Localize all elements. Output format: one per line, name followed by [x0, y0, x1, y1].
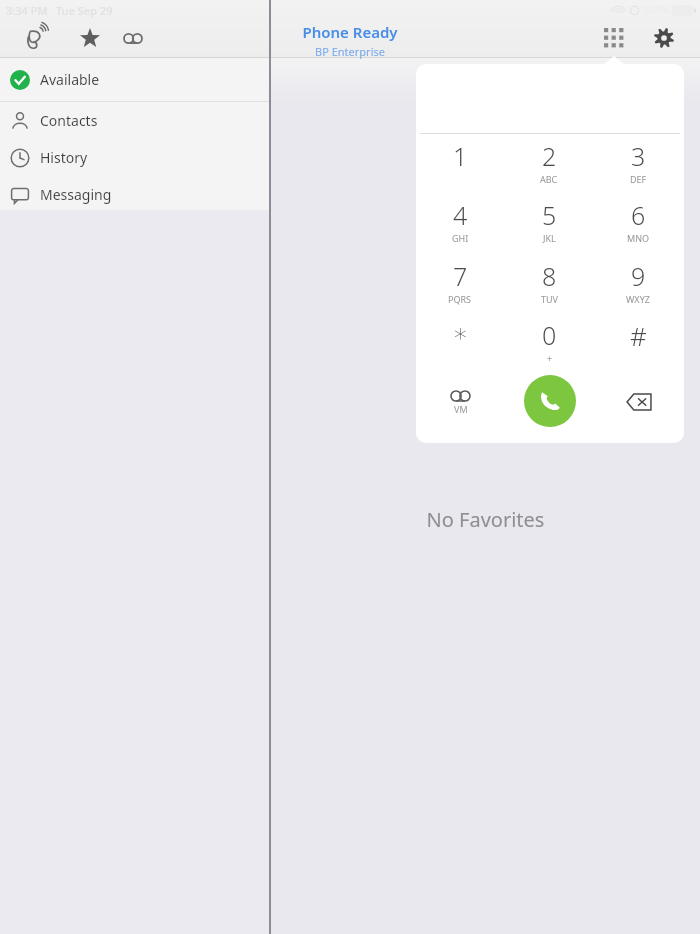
- staticText: WXYZ: [626, 293, 650, 305]
- staticText: ABC: [540, 173, 558, 185]
- button[interactable]: 2: [517, 139, 581, 187]
- staticText: 6: [631, 198, 646, 232]
- staticText: History: [40, 148, 88, 167]
- button[interactable]: Dialpad: [596, 20, 632, 56]
- button[interactable]: 3: [606, 139, 670, 187]
- button[interactable]: Available: [0, 58, 269, 101]
- staticText: 0: [542, 318, 557, 352]
- staticText: Available: [40, 70, 100, 89]
- staticText: 7: [453, 259, 468, 293]
- staticText: 3:34 PM Tue Sep 29: [6, 3, 113, 18]
- button[interactable]: 4: [428, 198, 492, 246]
- staticText: 4: [453, 198, 468, 232]
- button[interactable]: 9: [606, 259, 670, 307]
- staticText: DEF: [630, 173, 647, 185]
- button[interactable]: History: [0, 139, 269, 176]
- staticText: 8: [542, 259, 557, 293]
- staticText: BP Enterprise: [315, 44, 385, 59]
- button[interactable]: 7: [428, 259, 492, 307]
- button[interactable]: Voicemail: [115, 20, 151, 56]
- button[interactable]: 1: [428, 139, 492, 187]
- button[interactable]: Favorites: [72, 20, 108, 56]
- staticText: +: [547, 352, 553, 364]
- staticText: JKL: [543, 232, 556, 244]
- staticText: 9: [631, 259, 646, 293]
- button[interactable]: 8: [517, 259, 581, 307]
- button[interactable]: Messaging: [0, 176, 269, 213]
- staticText: GHI: [452, 232, 469, 244]
- staticText: MNO: [627, 232, 650, 244]
- button[interactable]: App logo: [16, 18, 56, 58]
- staticText: PQRS: [448, 293, 472, 305]
- staticText: #: [630, 318, 647, 353]
- staticText: Contacts: [40, 111, 98, 130]
- staticText: ∗: [452, 318, 469, 348]
- staticText: Phone Ready: [302, 22, 398, 42]
- staticText: 2: [542, 139, 557, 173]
- button[interactable]: 0: [517, 318, 581, 366]
- staticText: 1: [453, 139, 468, 173]
- staticText: Messaging: [40, 185, 112, 204]
- staticText: 5: [542, 198, 557, 232]
- button[interactable]: Voicemail: [430, 376, 490, 428]
- staticText: No Favorites: [271, 506, 700, 533]
- button[interactable]: Backspace: [609, 376, 669, 428]
- button[interactable]: #: [606, 318, 670, 366]
- button[interactable]: 6: [606, 198, 670, 246]
- staticText: TUV: [541, 293, 558, 305]
- button[interactable]: 5: [517, 198, 581, 246]
- staticText: 3: [631, 139, 646, 173]
- staticText: VM: [454, 403, 468, 415]
- button[interactable]: Settings: [646, 20, 682, 56]
- button[interactable]: ∗: [428, 318, 492, 366]
- button[interactable]: Call: [524, 375, 576, 427]
- button[interactable]: Phone Ready: [245, 22, 455, 59]
- button[interactable]: Contacts: [0, 102, 269, 139]
